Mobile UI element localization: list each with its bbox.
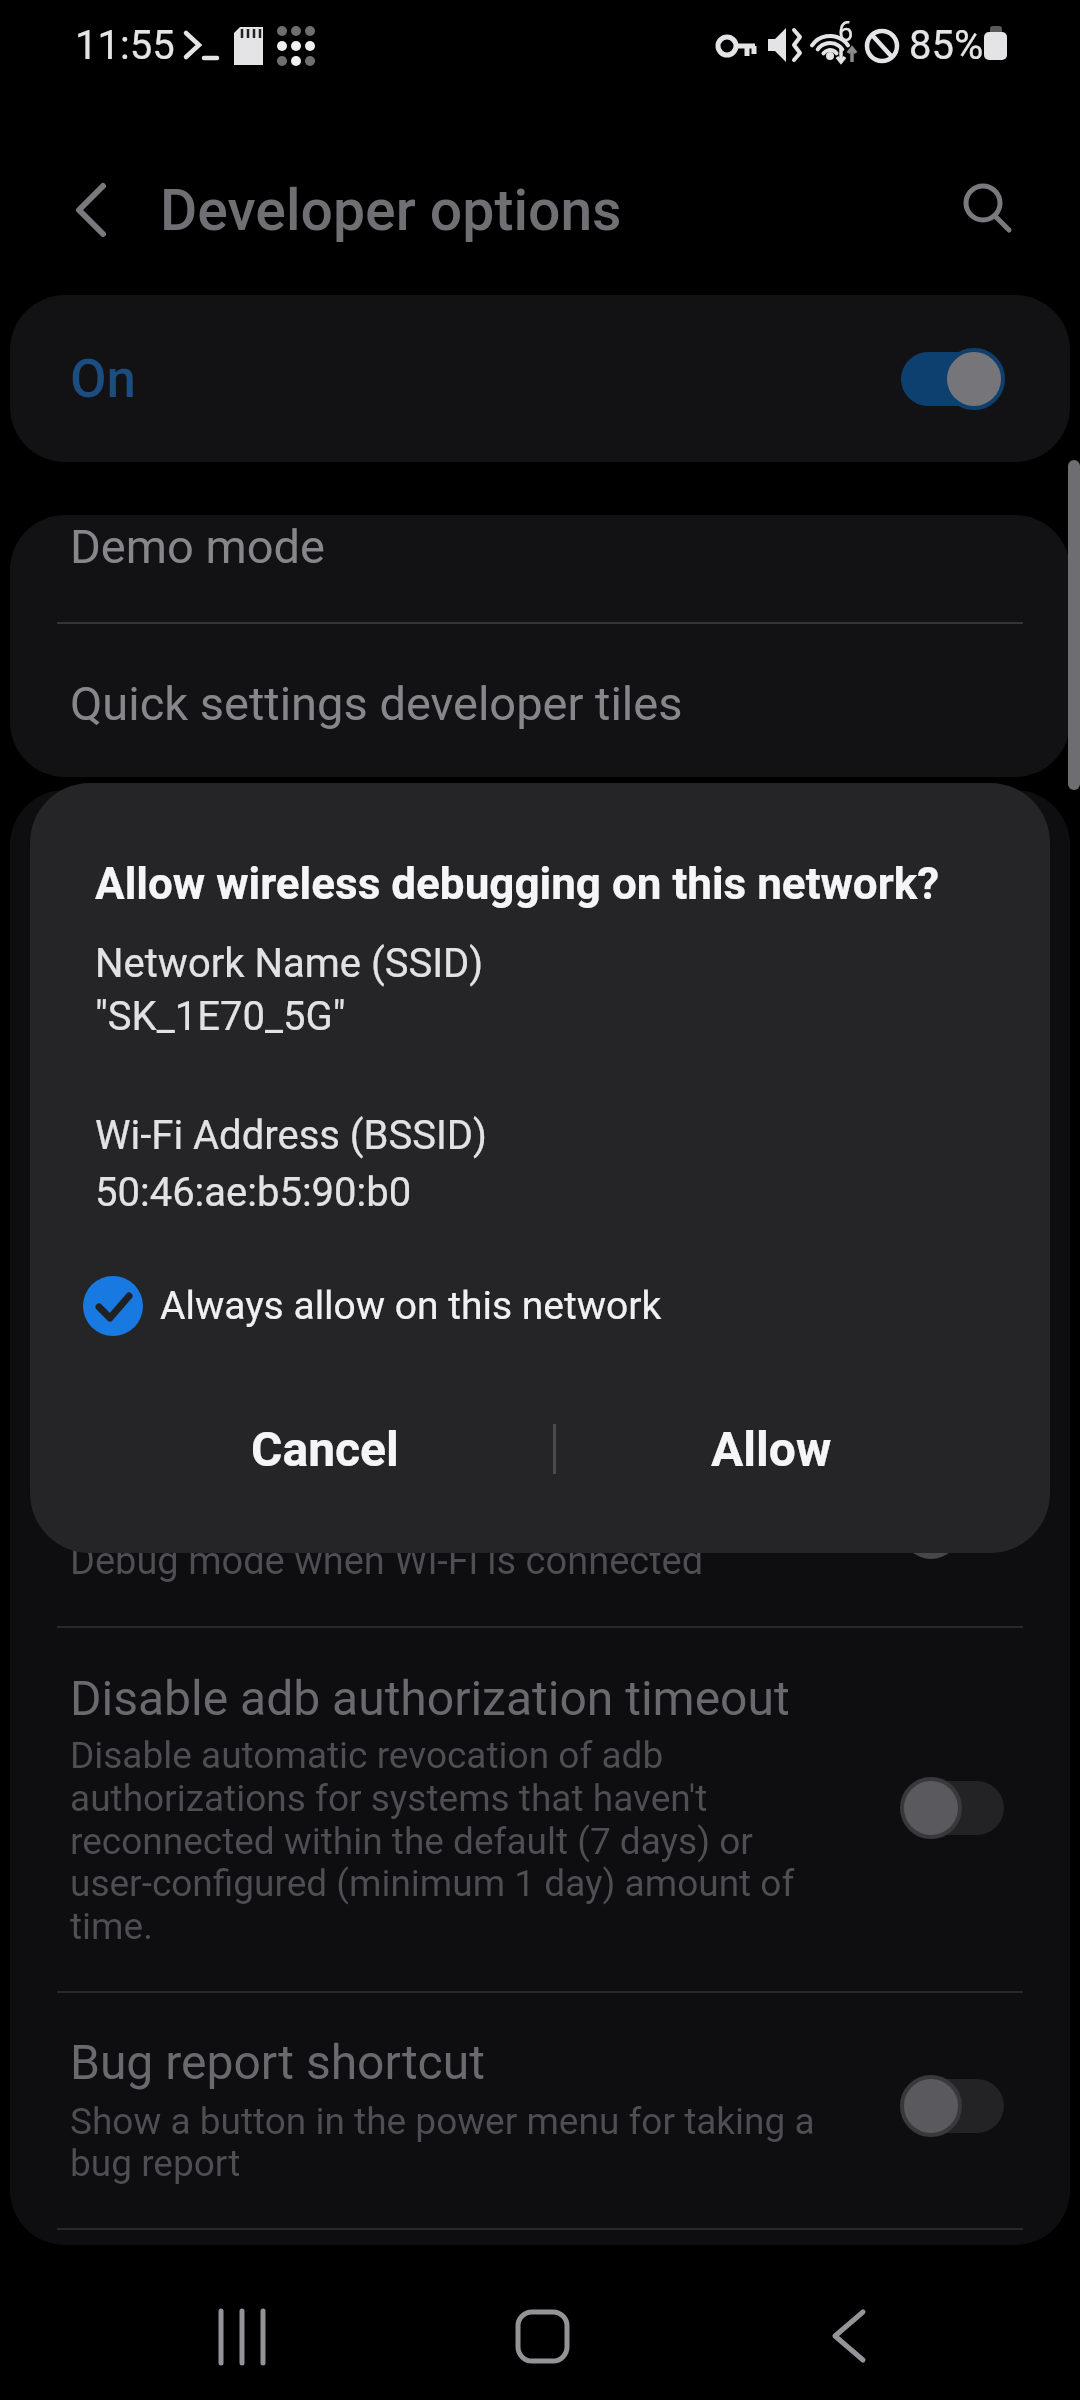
staticText: 6 <box>838 16 854 48</box>
button[interactable]: Quick settings developer tiles <box>10 623 1070 777</box>
staticText: "SK_1E70_5G" <box>95 993 346 1040</box>
button[interactable] <box>205 2296 285 2376</box>
button[interactable]: Always allow on this network <box>70 1261 710 1351</box>
button[interactable] <box>950 172 1026 248</box>
staticText: 85% <box>909 22 984 69</box>
button[interactable] <box>503 2296 583 2376</box>
staticText: Show a button in the power menu for taki… <box>70 2100 815 2143</box>
staticText: 50:46:ae:b5:90:b0 <box>95 1169 412 1216</box>
button[interactable] <box>898 347 1008 411</box>
button[interactable] <box>898 1776 1008 1840</box>
staticText: On <box>70 348 137 410</box>
button[interactable] <box>898 2074 1008 2138</box>
staticText: Quick settings developer tiles <box>70 676 683 731</box>
staticText: user-configured (minimum 1 day) amount o… <box>70 1862 795 1905</box>
staticText: Wi-Fi Address (BSSID) <box>95 1112 488 1159</box>
staticText: Cancel <box>251 1421 399 1477</box>
staticText: bug report <box>70 2142 241 2185</box>
staticText: Disable adb authorization timeout <box>70 1670 790 1726</box>
button[interactable] <box>55 175 125 245</box>
staticText: Disable automatic revocation of adb <box>70 1734 664 1777</box>
staticText: time. <box>70 1905 153 1948</box>
button[interactable]: Demo mode <box>10 515 1070 623</box>
button[interactable]: On <box>10 295 1070 462</box>
staticText: Developer options <box>160 177 622 244</box>
button[interactable]: Bug report shortcut <box>10 1993 1070 2230</box>
staticText: Allow <box>711 1421 832 1477</box>
staticText: Always allow on this network <box>160 1283 662 1329</box>
staticText: Demo mode <box>70 519 325 574</box>
staticText: authorizations for systems that haven't <box>70 1777 708 1820</box>
button[interactable]: Cancel <box>135 1389 515 1509</box>
staticText: reconnected within the default (7 days) … <box>70 1820 753 1863</box>
staticText: Bug report shortcut <box>70 2034 485 2090</box>
staticText: 11:55 <box>75 22 175 69</box>
button[interactable] <box>805 2296 885 2376</box>
button[interactable]: Disable adb authorization timeout <box>10 1628 1070 1992</box>
staticText: Debug mode when Wi-Fi is connected <box>70 1539 704 1584</box>
button[interactable]: Allow <box>581 1389 961 1509</box>
staticText: Network Name (SSID) <box>95 940 484 987</box>
staticText: Allow wireless debugging on this network… <box>95 858 940 910</box>
